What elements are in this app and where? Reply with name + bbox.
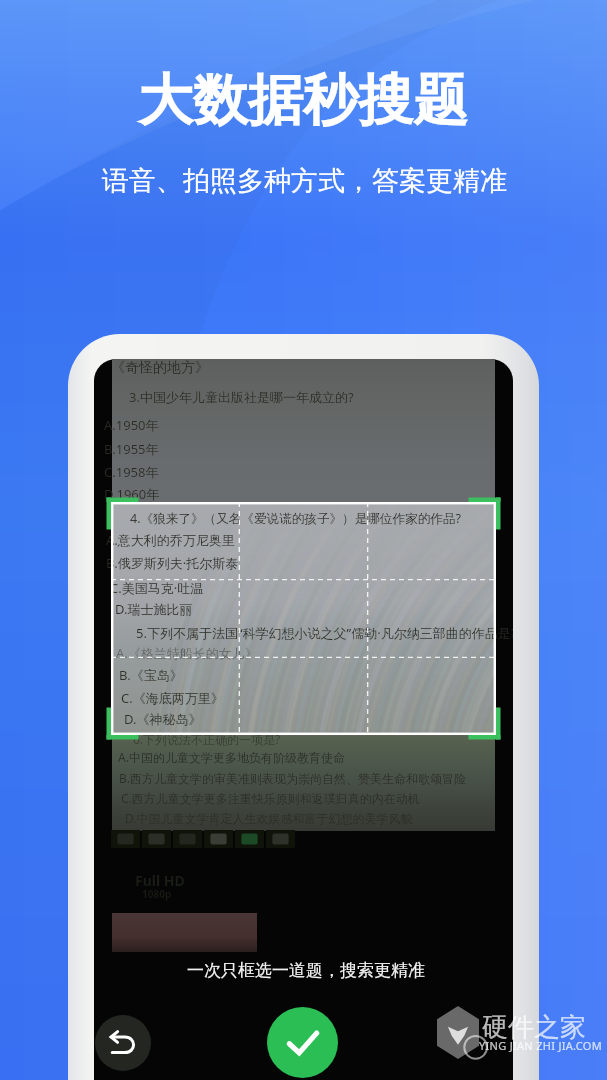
- staticText: 3.中国少年儿童出版社是哪一年成立的?: [129, 388, 354, 406]
- staticText: 《奇怪的地方》: [111, 359, 209, 377]
- staticText: 1080p: [142, 887, 172, 901]
- staticText: 大数据秒搜题: [138, 66, 468, 135]
- staticText: C.《海底两万里》: [121, 689, 224, 707]
- staticText: 硬件之家: [482, 1011, 586, 1044]
- staticText: D.瑞士施比丽: [115, 600, 193, 618]
- staticText: 6.下列说法不正确的一项是?: [133, 731, 281, 747]
- staticText: A.意大利的乔万尼奥里: [106, 531, 235, 549]
- staticText: D.1960年: [104, 485, 160, 503]
- staticText: B.《宝岛》: [119, 666, 183, 684]
- staticText: A.中国的儿童文学更多地负有阶级教育使命: [118, 749, 345, 765]
- staticText: C.美国马克·吐温: [110, 579, 204, 597]
- button[interactable]: Confirm: [267, 1007, 338, 1078]
- staticText: YING JIAN ZHI JIA.COM: [479, 1038, 602, 1053]
- staticText: Full HD: [135, 871, 185, 890]
- staticText: C.西方儿童文学更多注重快乐原则和返璞归真的内在动机: [121, 790, 420, 806]
- staticText: A.《格兰特船长的女儿》: [116, 644, 258, 662]
- staticText: 4.《狼来了》（又名《爱说谎的孩子》）是哪位作家的作品?: [130, 510, 461, 527]
- staticText: B.俄罗斯列夫·托尔斯泰: [106, 554, 239, 572]
- staticText: 5.下列不属于法国“科学幻想小说之父”儒勒·凡尔纳三部曲的作品是?: [136, 624, 513, 642]
- button[interactable]: Undo: [95, 1015, 151, 1071]
- staticText: A.1950年: [104, 416, 159, 434]
- staticText: D.《神秘岛》: [124, 710, 202, 728]
- staticText: C.1958年: [104, 463, 159, 481]
- staticText: B.西方儿童文学的审美准则表现为崇尚自然、赞美生命和歌颂冒险: [119, 770, 466, 786]
- staticText: 语音、拍照多种方式，答案更精准: [102, 164, 507, 198]
- staticText: 一次只框选一道题，搜索更精准: [187, 960, 425, 981]
- staticText: D.中国儿童文学肯定人生欢娱感和富于幻想的美学风貌: [125, 810, 413, 826]
- staticText: B.1955年: [104, 440, 159, 458]
